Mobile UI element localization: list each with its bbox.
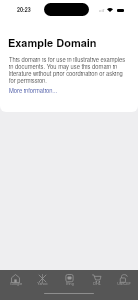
staticText: More information... <box>9 86 58 94</box>
other: Yahoo <box>38 274 47 283</box>
staticText: Google <box>10 281 22 286</box>
staticText: Example Domain <box>8 35 97 51</box>
button[interactable]: Yahoo <box>29 274 56 288</box>
other: UNICEF <box>119 274 128 283</box>
staticText: UNICEF <box>117 281 131 286</box>
staticText: Bing <box>66 281 74 286</box>
other: Bing <box>65 274 74 283</box>
staticText: This domain is for use in illustrative e… <box>9 55 126 84</box>
other: Google <box>11 274 20 283</box>
button[interactable]: Google <box>2 274 29 288</box>
button[interactable]: UNICEF <box>110 274 137 288</box>
staticText: Yahoo <box>37 281 48 286</box>
button[interactable]: More information... <box>9 86 58 94</box>
button[interactable]: DHL <box>83 274 110 288</box>
staticText: 20:23 <box>17 5 31 14</box>
other: DHL <box>92 274 101 283</box>
staticText: DHL <box>93 281 101 286</box>
button[interactable]: Bing <box>56 274 83 288</box>
